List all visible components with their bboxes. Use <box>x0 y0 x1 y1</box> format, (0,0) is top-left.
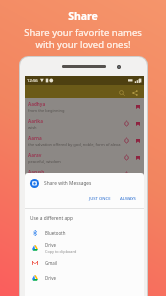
button[interactable]: Gmail <box>25 255 144 270</box>
staticText: Drive <box>45 275 56 281</box>
button[interactable]: Aadhya <box>25 98 144 115</box>
button[interactable]: Aarika <box>25 115 144 132</box>
staticText: Gmail <box>45 260 58 266</box>
button[interactable]: Trending <box>122 153 131 162</box>
staticText: the salvation offered by god, noble, for… <box>28 142 121 147</box>
staticText: Aarush <box>28 169 45 175</box>
staticText: Copy to clipboard <box>45 249 77 254</box>
button[interactable]: Trending <box>122 119 131 128</box>
staticText: wish <box>28 125 37 130</box>
staticText: peaceful, wisdom <box>28 159 61 164</box>
button[interactable]: Drive <box>25 270 144 285</box>
staticText: Bluetooth <box>45 230 66 236</box>
button[interactable]: Aarav <box>25 149 144 166</box>
staticText: Share <box>68 9 98 23</box>
button[interactable]: Share with Messages <box>25 173 144 193</box>
button[interactable]: Drive <box>25 240 144 255</box>
staticText: Use a different app <box>30 215 74 222</box>
staticText: Aarika <box>28 118 43 124</box>
button[interactable]: Search <box>116 87 127 98</box>
button[interactable]: Bluetooth <box>25 225 144 240</box>
button[interactable]: Bookmark <box>133 153 142 162</box>
button[interactable]: Trending <box>122 170 131 179</box>
staticText: Aadhya <box>28 101 46 107</box>
staticText: Share your favorite names with your love… <box>24 26 142 51</box>
button[interactable]: Bookmark <box>133 119 142 128</box>
staticText: Aarna <box>28 135 42 141</box>
button[interactable]: Aarush <box>25 166 144 183</box>
button[interactable]: Trending <box>122 136 131 145</box>
button[interactable]: JUST ONCE <box>86 194 114 204</box>
staticText: first ray of the sun <box>28 176 63 181</box>
staticText: from the beginning <box>28 108 65 113</box>
staticText: 12:56 <box>27 78 38 84</box>
button[interactable]: Bookmark <box>133 170 142 179</box>
staticText: ALWAYS <box>120 196 136 202</box>
staticText: Aarav <box>28 152 42 158</box>
button[interactable]: Share <box>129 87 140 98</box>
button[interactable]: Aarna <box>25 132 144 149</box>
button[interactable]: Bookmark <box>133 136 142 145</box>
button[interactable]: Bookmark <box>133 102 142 111</box>
staticText: Share with Messages <box>44 180 92 187</box>
button[interactable]: ALWAYS <box>117 194 139 204</box>
staticText: JUST ONCE <box>89 196 111 202</box>
staticText: Drive <box>45 242 56 248</box>
